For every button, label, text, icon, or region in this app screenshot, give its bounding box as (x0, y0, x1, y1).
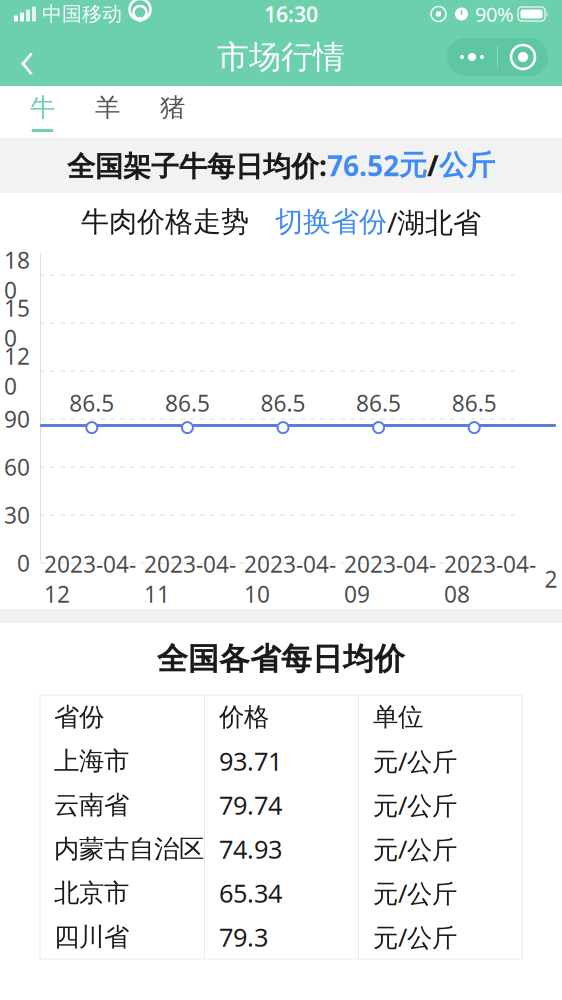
staticText: 上海市 (54, 745, 129, 776)
staticText: 公斤 (439, 148, 495, 183)
staticText: ‹ (19, 20, 34, 94)
staticText: 元/公斤 (373, 788, 457, 822)
staticText: 2023-04- 12 (44, 549, 136, 609)
staticText: 元 (399, 148, 427, 183)
staticText: 2023-04- 09 (344, 549, 436, 609)
staticText: 单位 (373, 701, 423, 732)
staticText: 猪 (160, 92, 185, 123)
staticText: 元/公斤 (373, 744, 457, 778)
button[interactable]: 切换省份 (249, 205, 387, 239)
staticText: 元/公斤 (373, 920, 457, 954)
staticText: 全国架子牛每日均价: (67, 147, 327, 184)
staticText: 60 (4, 452, 30, 482)
staticText: 86.5 (165, 388, 210, 418)
staticText: 120 (4, 341, 30, 401)
staticText: 牛肉价格走势 (81, 205, 249, 239)
staticText: 93.71 (219, 744, 282, 778)
button[interactable]: 牛 (10, 86, 75, 138)
staticText: 价格 (219, 701, 269, 732)
staticText: 16:30 (264, 0, 318, 28)
button[interactable]: Close (498, 38, 548, 76)
staticText: 2023-04- 10 (244, 549, 336, 609)
staticText: 76.52 (327, 147, 399, 184)
staticText: 150 (4, 293, 30, 353)
staticText: 30 (4, 500, 30, 530)
button[interactable]: 羊 (75, 86, 140, 138)
staticText: 元/公斤 (373, 876, 457, 910)
staticText: 0 (17, 548, 30, 578)
staticText: 180 (4, 245, 30, 305)
staticText: 74.93 (219, 832, 282, 866)
button[interactable]: 猪 (140, 86, 205, 138)
staticText: 四川省 (54, 921, 129, 952)
staticText: 省份 (54, 701, 104, 732)
staticText: 全国各省每日均价 (157, 640, 405, 678)
staticText: 86.5 (356, 388, 401, 418)
staticText: 79.74 (219, 788, 282, 822)
staticText: 86.5 (260, 388, 305, 418)
staticText: 中国移动 (42, 2, 122, 26)
staticText: 90% (475, 1, 514, 27)
staticText: 北京市 (54, 877, 129, 908)
staticText: 云南省 (54, 789, 129, 820)
staticText: 牛 (30, 92, 55, 123)
staticText: 2023-04- 08 (444, 549, 536, 609)
staticText: 切换省份 (275, 205, 387, 239)
staticText: 65.34 (219, 876, 282, 910)
staticText: 86.5 (69, 388, 114, 418)
button[interactable]: Back (0, 30, 54, 84)
staticText: 市场行情 (217, 37, 345, 77)
staticText: 2023-04- 11 (144, 549, 236, 609)
staticText: 羊 (95, 92, 120, 123)
staticText: 元/公斤 (373, 832, 457, 866)
button[interactable]: More (447, 38, 497, 76)
staticText: /湖北省 (387, 203, 481, 241)
staticText: 2 (544, 564, 557, 594)
staticText: 90 (4, 404, 30, 434)
staticText: / (427, 147, 439, 184)
staticText: 79.3 (219, 920, 268, 954)
staticText: 86.5 (452, 388, 497, 418)
staticText: 内蒙古自治区 (54, 833, 204, 864)
